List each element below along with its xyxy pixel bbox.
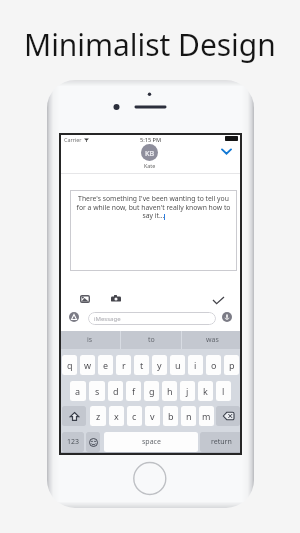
button[interactable]: u bbox=[170, 355, 185, 375]
button[interactable]: x bbox=[109, 406, 124, 426]
staticText: d bbox=[113, 385, 119, 397]
staticText: to bbox=[148, 335, 155, 345]
button[interactable]: s bbox=[89, 381, 105, 401]
staticText: t bbox=[140, 359, 144, 371]
staticText: a bbox=[75, 385, 81, 397]
staticText: v bbox=[150, 410, 155, 422]
button[interactable]: was bbox=[182, 331, 242, 349]
staticText: n bbox=[186, 410, 192, 422]
button[interactable]: k bbox=[198, 381, 213, 401]
button[interactable]: Shift bbox=[62, 406, 86, 426]
staticText: u bbox=[175, 359, 181, 371]
button[interactable]: e bbox=[98, 355, 113, 375]
button[interactable]: Backspace bbox=[216, 406, 240, 426]
button[interactable]: d bbox=[108, 381, 123, 401]
staticText: h bbox=[167, 385, 173, 397]
button[interactable]: i bbox=[188, 355, 203, 375]
button[interactable]: is bbox=[59, 331, 120, 349]
staticText: k bbox=[203, 385, 208, 397]
button[interactable]: h bbox=[162, 381, 177, 401]
button[interactable]: to bbox=[121, 331, 181, 349]
staticText: q bbox=[67, 359, 73, 371]
button[interactable]: g bbox=[144, 381, 159, 401]
staticText: r bbox=[122, 359, 126, 371]
staticText: There's something I've been wanting to t… bbox=[74, 194, 233, 220]
staticText: l bbox=[222, 385, 225, 397]
staticText: Kate bbox=[144, 162, 156, 169]
staticText: w bbox=[84, 359, 92, 371]
staticText: space bbox=[142, 437, 161, 447]
staticText: s bbox=[95, 385, 100, 397]
button[interactable]: Camera bbox=[110, 293, 121, 304]
staticText: e bbox=[103, 359, 109, 371]
staticText: z bbox=[96, 410, 101, 422]
button[interactable]: y bbox=[152, 355, 167, 375]
staticText: 5:15 PM bbox=[140, 136, 162, 144]
button[interactable]: return bbox=[200, 432, 242, 452]
button[interactable]: j bbox=[180, 381, 195, 401]
staticText: return bbox=[211, 437, 232, 447]
staticText: g bbox=[149, 385, 155, 397]
staticText: f bbox=[132, 385, 136, 397]
button[interactable]: Collapse conversation bbox=[218, 143, 234, 159]
staticText: o bbox=[211, 359, 217, 371]
button[interactable]: v bbox=[145, 406, 160, 426]
button[interactable]: n bbox=[181, 406, 196, 426]
staticText: 123 bbox=[67, 437, 80, 447]
button[interactable]: KB bbox=[141, 144, 158, 161]
button[interactable]: r bbox=[116, 355, 131, 375]
button[interactable]: a bbox=[70, 381, 86, 401]
button[interactable]: Emoji bbox=[86, 432, 100, 452]
button[interactable]: iMessage bbox=[88, 312, 216, 325]
button[interactable]: o bbox=[206, 355, 221, 375]
button[interactable]: z bbox=[90, 406, 106, 426]
staticText: x bbox=[114, 410, 119, 422]
button[interactable]: space bbox=[104, 432, 198, 452]
staticText: p bbox=[229, 359, 235, 371]
staticText: i bbox=[194, 359, 197, 371]
staticText: KB bbox=[145, 148, 155, 158]
staticText: c bbox=[132, 410, 137, 422]
button[interactable]: c bbox=[127, 406, 142, 426]
staticText: b bbox=[168, 410, 174, 422]
button[interactable]: m bbox=[199, 406, 214, 426]
button[interactable]: Photo library bbox=[79, 293, 90, 304]
button[interactable]: b bbox=[163, 406, 178, 426]
staticText: is bbox=[87, 335, 93, 345]
button[interactable]: l bbox=[216, 381, 231, 401]
button[interactable]: q bbox=[62, 355, 77, 375]
staticText: Minimalist Design bbox=[24, 24, 276, 65]
staticText: Carrier bbox=[64, 136, 82, 143]
button[interactable]: 123 bbox=[62, 432, 84, 452]
staticText: iMessage bbox=[94, 315, 121, 323]
button[interactable]: f bbox=[126, 381, 141, 401]
button[interactable]: Apps bbox=[68, 311, 79, 322]
button[interactable]: w bbox=[80, 355, 95, 375]
button[interactable]: p bbox=[224, 355, 239, 375]
button[interactable]: Dictate bbox=[221, 311, 232, 322]
staticText: was bbox=[206, 335, 219, 345]
button[interactable]: t bbox=[134, 355, 149, 375]
staticText: y bbox=[157, 359, 162, 371]
staticText: m bbox=[202, 410, 211, 422]
staticText: j bbox=[186, 385, 189, 397]
button[interactable]: Done bbox=[211, 293, 225, 307]
